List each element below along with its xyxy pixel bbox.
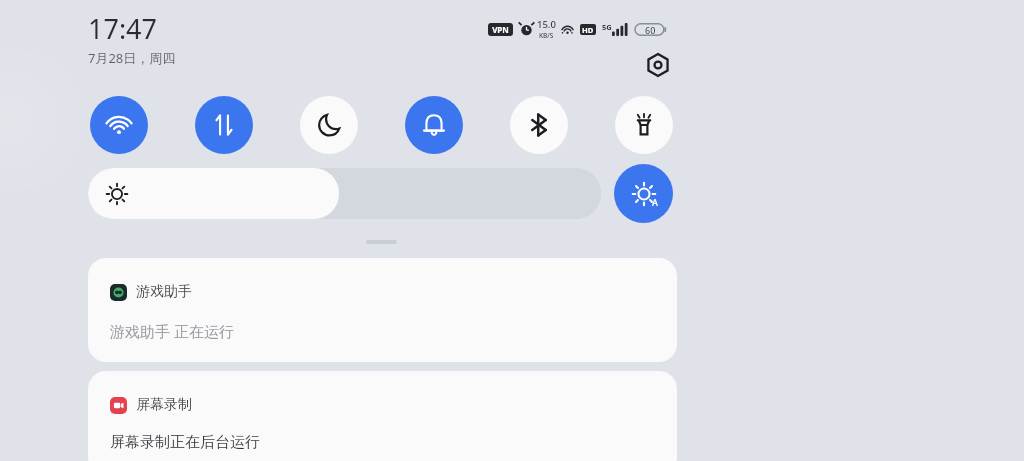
button[interactable]: Flashlight bbox=[615, 96, 673, 154]
button[interactable]: Settings bbox=[638, 45, 678, 85]
button[interactable]: Dark mode bbox=[300, 96, 358, 154]
button[interactable]: Mobile data bbox=[195, 96, 253, 154]
staticText: 15.0 bbox=[537, 18, 556, 31]
button[interactable]: Wi-Fi bbox=[90, 96, 148, 154]
staticText: HD bbox=[582, 25, 594, 35]
button[interactable]: 屏幕录制 bbox=[88, 371, 677, 461]
staticText: 7月28日，周四 bbox=[88, 49, 176, 67]
staticText: A bbox=[652, 196, 658, 208]
staticText: 屏幕录制正在后台运行 bbox=[110, 433, 260, 452]
button[interactable]: Auto brightness bbox=[614, 164, 673, 223]
button[interactable]: Bluetooth bbox=[510, 96, 568, 154]
staticText: 17:47 bbox=[88, 10, 158, 47]
button[interactable]: Brightness bbox=[88, 168, 601, 219]
staticText: 屏幕录制 bbox=[136, 396, 192, 414]
button[interactable]: Ring bbox=[405, 96, 463, 154]
staticText: 60 bbox=[645, 24, 656, 36]
staticText: KB/S bbox=[539, 31, 554, 40]
staticText: 游戏助手 正在运行 bbox=[110, 321, 234, 341]
staticText: 游戏助手 bbox=[136, 283, 192, 301]
staticText: VPN bbox=[492, 24, 509, 35]
button[interactable]: 游戏助手 bbox=[88, 258, 677, 362]
staticText: 5G bbox=[602, 22, 612, 32]
